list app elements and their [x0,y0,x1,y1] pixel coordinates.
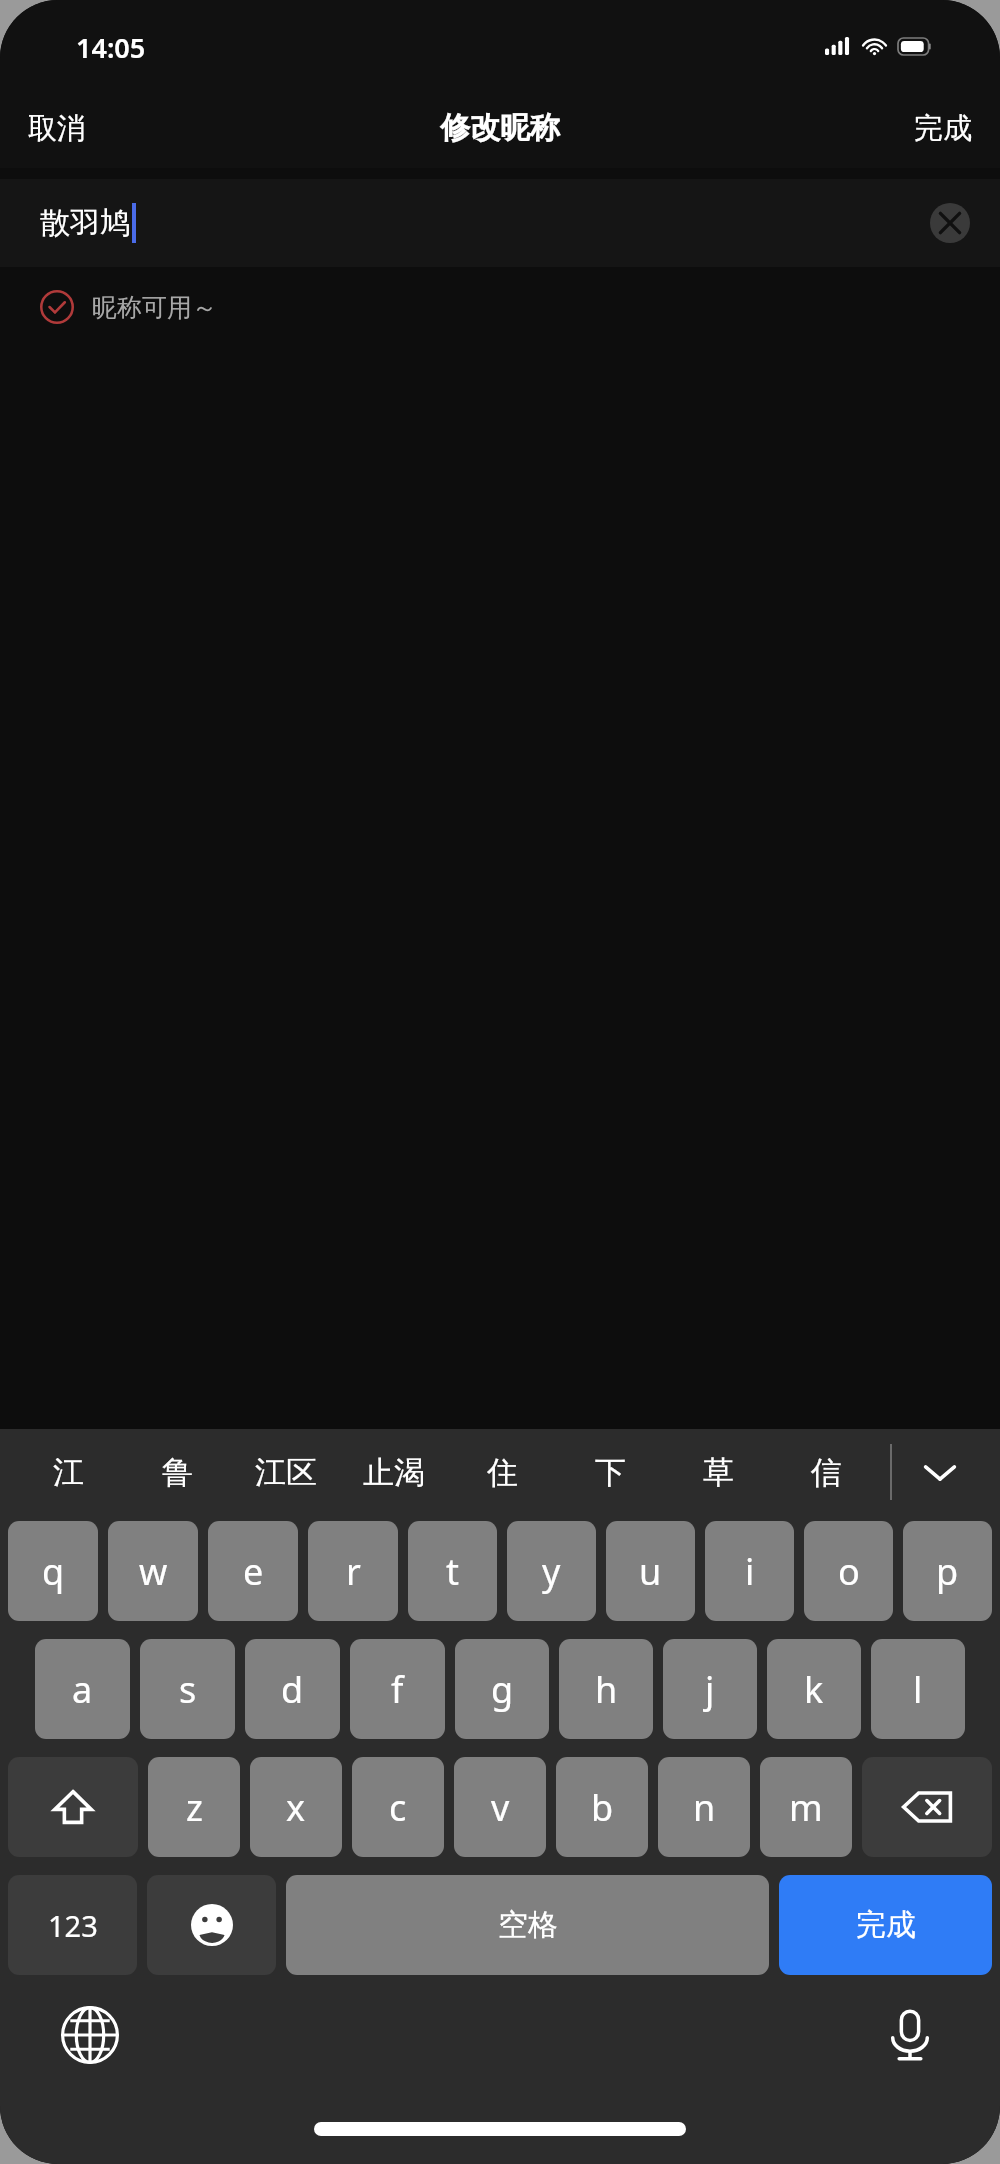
staticText: g [491,1665,514,1714]
staticText: k [804,1665,824,1714]
button[interactable]: o [804,1521,893,1621]
button[interactable]: w [108,1521,198,1621]
staticText: 鲁 [162,1453,193,1492]
staticText: 14:05 [76,29,146,66]
staticText: a [72,1665,93,1714]
button[interactable]: 信 [772,1429,880,1515]
staticText: j [705,1665,715,1714]
button[interactable]: 完成 [894,100,1000,157]
button[interactable]: z [148,1757,240,1857]
button[interactable]: p [903,1521,992,1621]
button[interactable]: 空格 [286,1875,769,1975]
staticText: c [389,1783,407,1832]
button[interactable]: b [556,1757,648,1857]
staticText: 完成 [856,1906,916,1944]
button[interactable]: x [250,1757,342,1857]
staticText: 江 [53,1453,84,1492]
staticText: d [281,1665,304,1714]
staticText: q [42,1547,65,1596]
button[interactable]: v [454,1757,546,1857]
button[interactable]: Switch keyboard [50,1995,130,2075]
staticText: y [542,1547,561,1596]
button[interactable]: Emoji [147,1875,276,1975]
button[interactable]: l [871,1639,965,1739]
button[interactable]: h [559,1639,653,1739]
button[interactable]: Backspace [862,1757,992,1857]
staticText: h [595,1665,618,1714]
button[interactable]: 下 [556,1429,664,1515]
button[interactable]: n [658,1757,750,1857]
button[interactable]: 取消 [0,100,106,157]
staticText: 信 [811,1453,842,1492]
staticText: n [693,1783,716,1832]
staticText: 散羽鸠 [40,204,130,242]
staticText: t [446,1547,459,1596]
button[interactable]: d [245,1639,340,1739]
button[interactable]: a [35,1639,130,1739]
button[interactable]: 散羽鸠 [0,179,1000,267]
button[interactable]: m [760,1757,852,1857]
staticText: b [591,1783,614,1832]
button[interactable]: Hide candidates [910,1442,970,1502]
button[interactable]: Clear text [928,201,972,245]
staticText: 住 [487,1453,518,1492]
staticText: 取消 [28,110,86,147]
button[interactable]: 止渴 [340,1429,448,1515]
staticText: v [491,1783,510,1832]
staticText: r [346,1547,361,1596]
staticText: 完成 [914,110,972,147]
staticText: z [186,1783,203,1832]
button[interactable]: r [308,1521,398,1621]
staticText: u [639,1547,662,1596]
staticText: 止渴 [363,1453,425,1492]
staticText: e [243,1547,264,1596]
staticText: o [838,1547,860,1596]
button[interactable]: c [352,1757,444,1857]
staticText: m [789,1783,823,1832]
staticText: f [391,1665,404,1714]
staticText: i [745,1547,755,1596]
button[interactable]: 鲁 [123,1429,232,1515]
staticText: 江区 [255,1453,317,1492]
button[interactable]: 123 [8,1875,137,1975]
staticText: l [913,1665,923,1714]
button[interactable]: q [8,1521,98,1621]
staticText: 昵称可用～ [92,292,217,323]
button[interactable]: 完成 [779,1875,992,1975]
button[interactable]: i [705,1521,794,1621]
staticText: 下 [595,1453,626,1492]
button[interactable]: k [767,1639,861,1739]
button[interactable]: Shift [8,1757,138,1857]
staticText: p [936,1547,959,1596]
button[interactable]: s [140,1639,235,1739]
button[interactable]: 草 [664,1429,772,1515]
button[interactable]: t [408,1521,497,1621]
staticText: 修改昵称 [440,109,560,147]
button[interactable]: j [663,1639,757,1739]
staticText: x [286,1783,306,1832]
button[interactable]: 住 [448,1429,556,1515]
button[interactable]: y [507,1521,596,1621]
staticText: 草 [703,1453,734,1492]
button[interactable]: e [208,1521,298,1621]
staticText: 空格 [498,1906,558,1944]
button[interactable]: g [455,1639,549,1739]
button[interactable]: u [606,1521,695,1621]
button[interactable]: f [350,1639,445,1739]
button[interactable]: 江 [14,1429,123,1515]
staticText: s [179,1665,197,1714]
button[interactable]: Voice input [870,1995,950,2075]
button[interactable]: 江区 [232,1429,340,1515]
staticText: 123 [48,1906,98,1945]
staticText: w [139,1547,168,1596]
